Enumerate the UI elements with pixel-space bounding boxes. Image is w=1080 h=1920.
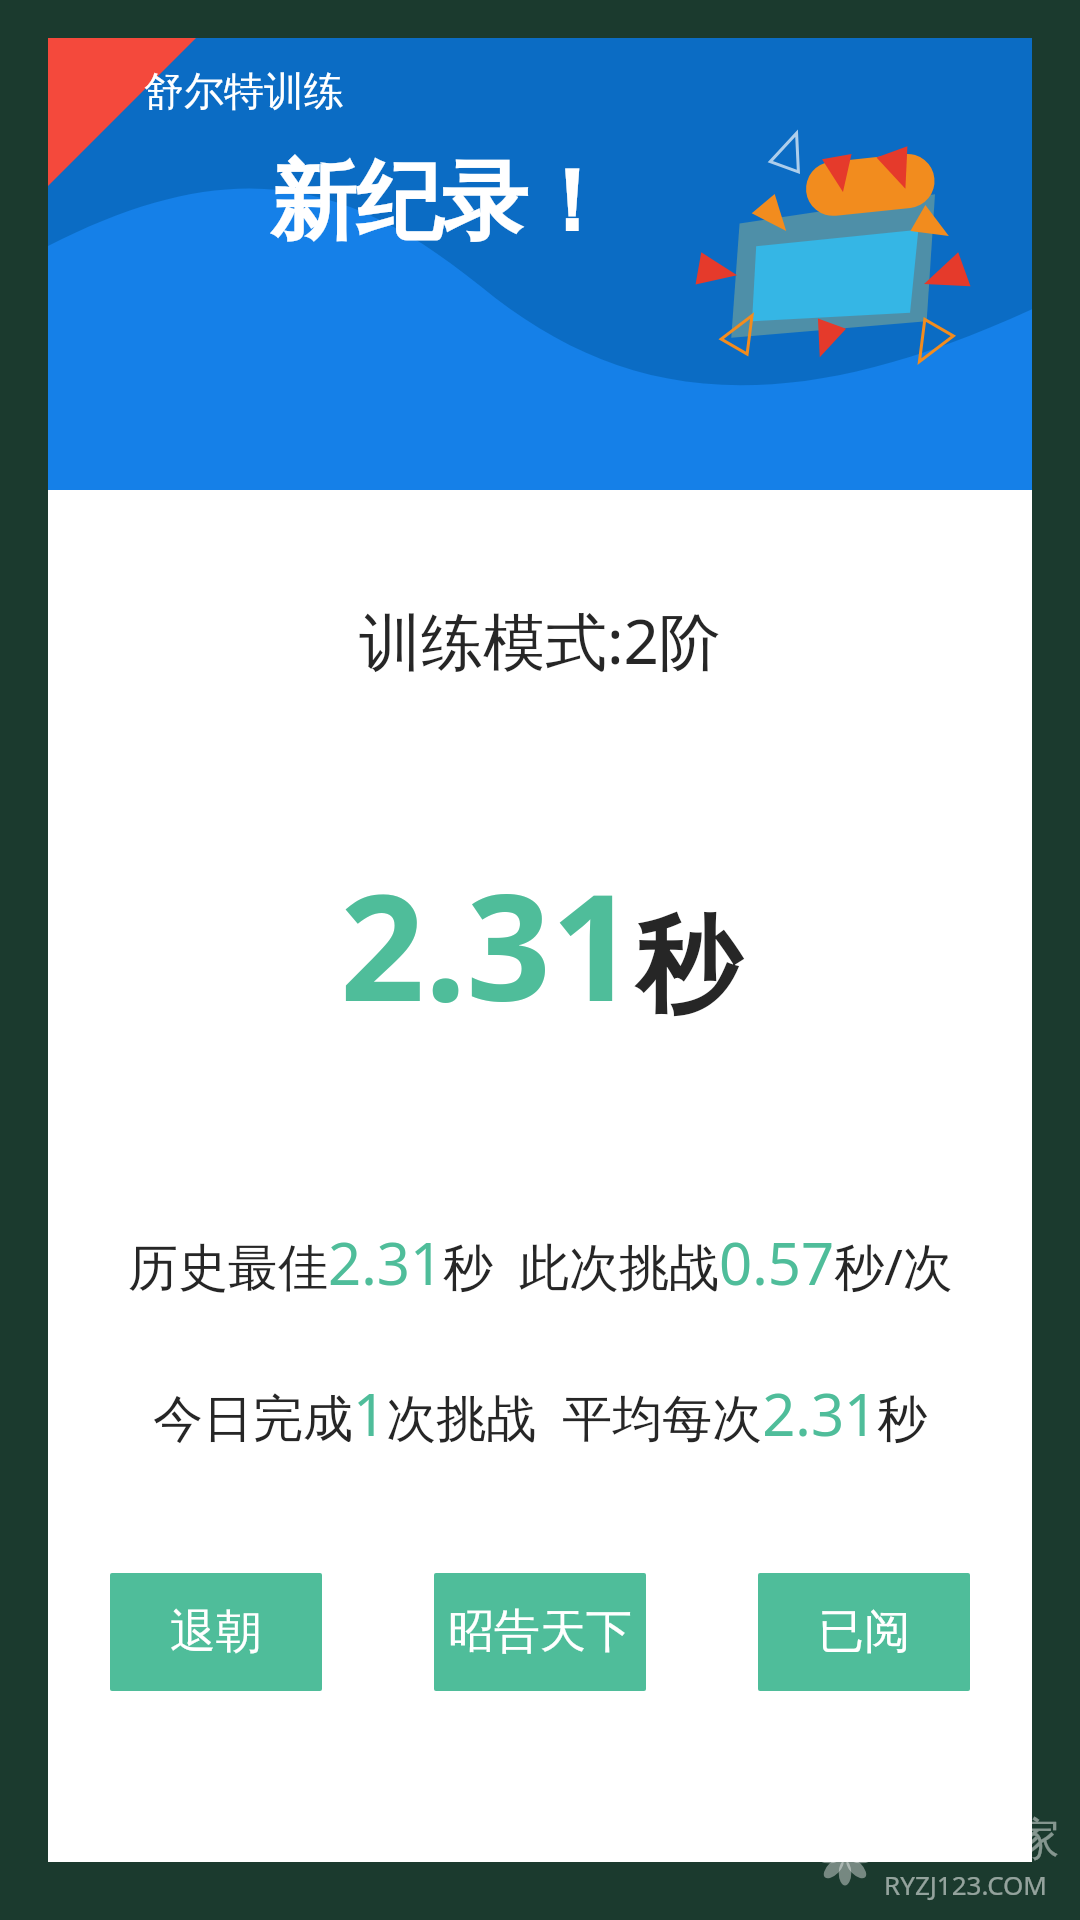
staticText: 今日完成1次挑战 平均每次2.31秒 [153,1374,928,1453]
staticText: RYZJ123.COM [884,1867,1047,1902]
staticText: 训练模式:2阶 [359,598,722,683]
staticText: 退朝 [170,1603,262,1661]
staticText: 2.31秒 [340,843,740,1045]
staticText: 新纪录！ [270,148,614,256]
staticText: 舒尔特训练 [144,66,344,116]
staticText: 昭告天下 [448,1603,632,1661]
staticText: 荣耀之家 [884,1812,1060,1867]
staticText: 已阅 [818,1603,910,1661]
button[interactable]: 退朝 [110,1573,322,1691]
button[interactable]: 昭告天下 [434,1573,646,1691]
button[interactable]: 已阅 [758,1573,970,1691]
staticText: 历史最佳2.31秒 此次挑战0.57秒/次 [128,1223,953,1302]
